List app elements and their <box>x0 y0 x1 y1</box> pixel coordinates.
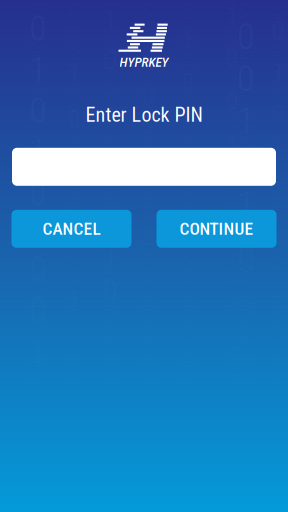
button[interactable]: CONTINUE <box>156 210 276 248</box>
staticText: 0 <box>237 16 255 58</box>
staticText: 0 <box>237 239 255 281</box>
staticText: HYPRKEY <box>119 54 168 70</box>
staticText: 0 <box>237 58 255 100</box>
button[interactable]: CANCEL <box>11 210 131 248</box>
staticText: 1 <box>103 238 117 272</box>
staticText: 1 <box>226 130 238 158</box>
staticText: CANCEL <box>42 219 100 239</box>
staticText: 1 <box>29 132 46 172</box>
staticText: Enter Lock PIN <box>85 103 202 126</box>
staticText: 1 <box>141 124 154 156</box>
staticText: 1 <box>29 214 46 254</box>
staticText: CONTINUE <box>179 219 253 239</box>
staticText: 0 <box>141 80 154 112</box>
staticText: 1 <box>271 140 284 172</box>
staticText: 0 <box>237 142 255 184</box>
staticText: 1 <box>237 184 255 226</box>
staticText: 0 <box>29 173 46 213</box>
staticText: 0 <box>68 200 80 230</box>
staticText: 1 <box>182 186 194 214</box>
staticText: 0 <box>226 214 238 242</box>
